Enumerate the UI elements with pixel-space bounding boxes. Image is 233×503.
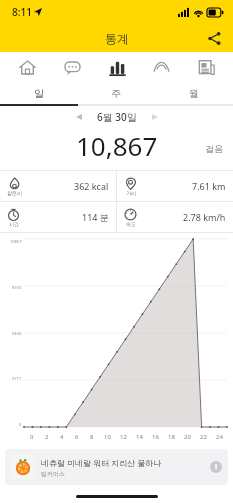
staticText: 362 kcal xyxy=(74,180,109,192)
staticText: 22 xyxy=(200,433,207,441)
staticText: 10 xyxy=(104,433,111,441)
staticText: 4 xyxy=(60,433,64,441)
staticText: 5434 xyxy=(12,331,22,336)
staticText: 칼로리 xyxy=(7,190,22,196)
staticText: 주 xyxy=(111,87,121,100)
staticText: 8:11 xyxy=(12,5,32,19)
staticText: 2.78 km/h xyxy=(183,211,226,223)
staticText: 속도 xyxy=(126,221,136,227)
button[interactable]: Next day xyxy=(147,109,163,125)
button[interactable]: Previous day xyxy=(71,109,87,125)
staticText: 네츄럴 미네랄 워터 지리산 물하나 xyxy=(41,457,162,468)
button[interactable]: 주 xyxy=(77,82,155,104)
staticText: 8150 xyxy=(12,285,22,290)
staticText: 114 분 xyxy=(82,211,109,223)
staticText: 2 xyxy=(45,433,49,441)
staticText: 14 xyxy=(136,433,143,441)
staticText: 월 xyxy=(189,87,199,100)
staticText: 8 xyxy=(90,433,94,441)
button[interactable]: Share xyxy=(203,27,225,49)
button[interactable]: 속도 xyxy=(117,202,233,232)
button[interactable]: News xyxy=(188,52,224,82)
button[interactable]: Home xyxy=(9,52,45,82)
staticText: 12 xyxy=(120,433,127,441)
staticText: 팀커머스 xyxy=(41,470,65,478)
staticText: 거리 xyxy=(126,190,136,196)
button[interactable]: 일 xyxy=(0,82,77,104)
staticText: 시간 xyxy=(9,221,19,227)
button[interactable]: 거리 xyxy=(117,171,233,201)
staticText: 2717 xyxy=(12,376,22,381)
button[interactable]: Chat xyxy=(54,52,90,82)
staticText: i xyxy=(215,462,218,472)
staticText: 24 xyxy=(216,433,223,441)
button[interactable]: 월 xyxy=(155,82,233,104)
button[interactable]: 네츄럴 미네랄 워터 지리산 물하나 xyxy=(5,449,228,485)
button[interactable]: 시간 xyxy=(0,202,116,232)
staticText: 0 xyxy=(30,433,34,441)
button[interactable]: Rank xyxy=(143,52,179,82)
staticText: 10,867 xyxy=(76,128,158,162)
button[interactable]: Ad info xyxy=(210,461,222,473)
staticText: 일 xyxy=(34,87,44,100)
staticText: 7.61 km xyxy=(192,180,226,192)
staticText: 20 xyxy=(184,433,191,441)
staticText: 통계 xyxy=(105,31,129,46)
staticText: 18 xyxy=(168,433,175,441)
button[interactable]: 칼로리 xyxy=(0,171,116,201)
staticText: 걸음 xyxy=(205,143,223,154)
staticText: 6월 30일 xyxy=(97,110,137,124)
staticText: 10867 xyxy=(10,239,22,244)
staticText: 6 xyxy=(75,433,79,441)
staticText: 0 xyxy=(19,422,22,427)
staticText: 16 xyxy=(152,433,159,441)
button[interactable]: Statistics xyxy=(99,52,135,82)
